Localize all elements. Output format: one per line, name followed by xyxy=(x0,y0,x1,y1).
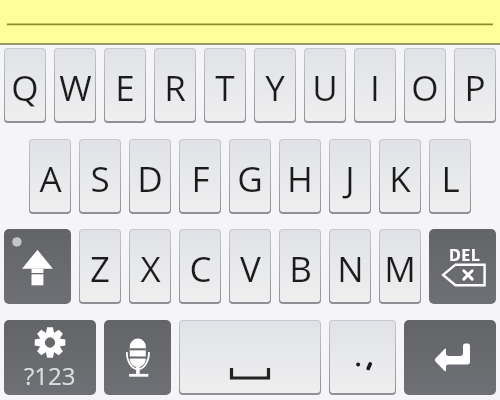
button[interactable]: L xyxy=(429,139,471,214)
button[interactable]: V xyxy=(229,229,271,304)
staticText: H xyxy=(287,155,313,203)
button[interactable]: G xyxy=(229,139,271,214)
staticText: U xyxy=(312,64,338,112)
button[interactable]: W xyxy=(54,48,96,123)
staticText: G xyxy=(237,155,263,203)
staticText: V xyxy=(240,245,261,293)
button[interactable]: O xyxy=(404,48,446,123)
button[interactable]: E xyxy=(104,48,146,123)
staticText: O xyxy=(411,64,439,112)
button[interactable]: P xyxy=(454,48,496,123)
staticText: A xyxy=(39,155,62,203)
staticText: Z xyxy=(90,245,110,293)
staticText: Y xyxy=(265,64,285,112)
staticText: I xyxy=(370,64,380,112)
staticText: J xyxy=(345,155,355,203)
staticText: N xyxy=(337,245,364,293)
button[interactable]: Shift xyxy=(4,229,71,304)
button[interactable]: U xyxy=(304,48,346,123)
button[interactable]: K xyxy=(379,139,421,214)
staticText: K xyxy=(389,155,411,203)
staticText: Q xyxy=(11,64,39,112)
staticText: D xyxy=(137,155,163,203)
staticText: M xyxy=(384,245,416,293)
staticText: W xyxy=(59,64,92,112)
button[interactable]: F xyxy=(179,139,221,214)
button[interactable]: A xyxy=(29,139,71,214)
staticText: T xyxy=(215,64,235,112)
staticText: P xyxy=(464,64,486,112)
button[interactable]: Space xyxy=(179,320,321,395)
button[interactable]: Y xyxy=(254,48,296,123)
button[interactable]: S xyxy=(79,139,121,214)
staticText: ?123 xyxy=(24,359,76,392)
button[interactable]: H xyxy=(279,139,321,214)
button[interactable]: C xyxy=(179,229,221,304)
staticText: C xyxy=(189,245,212,293)
button[interactable]: T xyxy=(204,48,246,123)
button[interactable]: N xyxy=(329,229,371,304)
button[interactable]: B xyxy=(279,229,321,304)
staticText: B xyxy=(289,245,312,293)
button[interactable]: I xyxy=(354,48,396,123)
button[interactable]: Z xyxy=(79,229,121,304)
staticText: R xyxy=(164,64,186,112)
button[interactable]: X xyxy=(129,229,171,304)
staticText: L xyxy=(441,155,460,203)
button[interactable]: J xyxy=(329,139,371,214)
button[interactable]: Delete xyxy=(429,229,496,304)
button[interactable]: Symbols ?123 xyxy=(4,320,96,395)
staticText: S xyxy=(90,155,110,203)
button[interactable]: Period and comma xyxy=(329,320,396,395)
button[interactable]: Suggestions xyxy=(0,0,500,45)
button[interactable]: M xyxy=(379,229,421,304)
staticText: F xyxy=(191,155,210,203)
button[interactable]: R xyxy=(154,48,196,123)
staticText: E xyxy=(115,64,135,112)
staticText: X xyxy=(140,245,161,293)
button[interactable]: D xyxy=(129,139,171,214)
staticText: DEL xyxy=(449,244,481,266)
button[interactable]: Enter xyxy=(404,320,496,395)
button[interactable]: Voice input xyxy=(104,320,171,395)
button[interactable]: Q xyxy=(4,48,46,123)
